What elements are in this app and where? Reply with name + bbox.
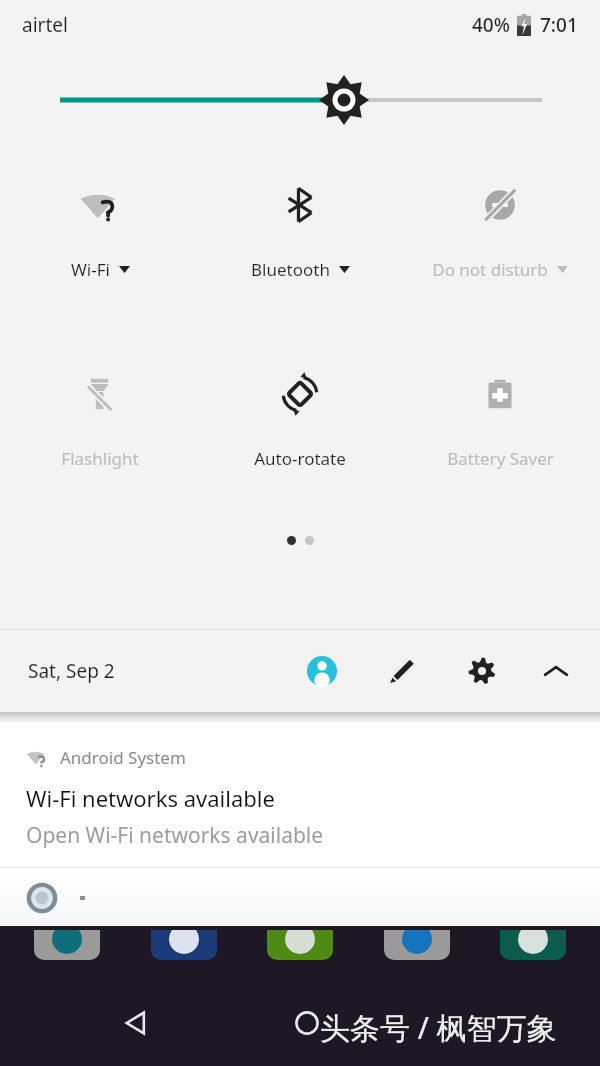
button[interactable]: User (300, 649, 344, 693)
staticText: airtel (22, 12, 68, 38)
button[interactable]: Wi-Fi (0, 178, 200, 285)
staticText: Open Wi-Fi networks available (26, 821, 324, 850)
button[interactable]: App (500, 926, 566, 960)
staticText: Bluetooth (251, 258, 330, 281)
button[interactable]: App (384, 926, 450, 960)
button[interactable]: Home (280, 996, 334, 1050)
staticText: 头条号 / 枫智万象 (320, 1007, 557, 1048)
button[interactable]: Auto-rotate (200, 367, 400, 474)
staticText: Auto-rotate (254, 447, 346, 470)
button[interactable]: App (151, 926, 217, 960)
staticText: Wi-Fi (71, 258, 110, 281)
button[interactable]: App (267, 926, 333, 960)
button[interactable]: App (34, 926, 100, 960)
button[interactable]: Back (108, 996, 162, 1050)
button[interactable] (0, 868, 600, 926)
button[interactable]: Do not disturb (400, 178, 600, 285)
staticText: Wi-Fi networks available (26, 783, 275, 813)
button[interactable]: Android System (0, 722, 600, 867)
staticText: Battery Saver (447, 447, 554, 470)
staticText: 7:01 (540, 12, 578, 38)
button[interactable]: Brightness (0, 72, 600, 128)
staticText: Do not disturb (432, 258, 548, 281)
button[interactable]: Collapse (534, 649, 578, 693)
button[interactable]: Battery Saver (400, 367, 600, 474)
button[interactable]: Settings (460, 649, 504, 693)
button[interactable]: Flashlight (0, 367, 200, 474)
staticText: 40% (472, 12, 510, 38)
button[interactable]: Bluetooth (200, 178, 400, 285)
staticText: Flashlight (61, 447, 139, 470)
staticText: Sat, Sep 2 (28, 658, 115, 684)
button[interactable]: Edit (380, 649, 424, 693)
staticText: Android System (60, 746, 186, 769)
